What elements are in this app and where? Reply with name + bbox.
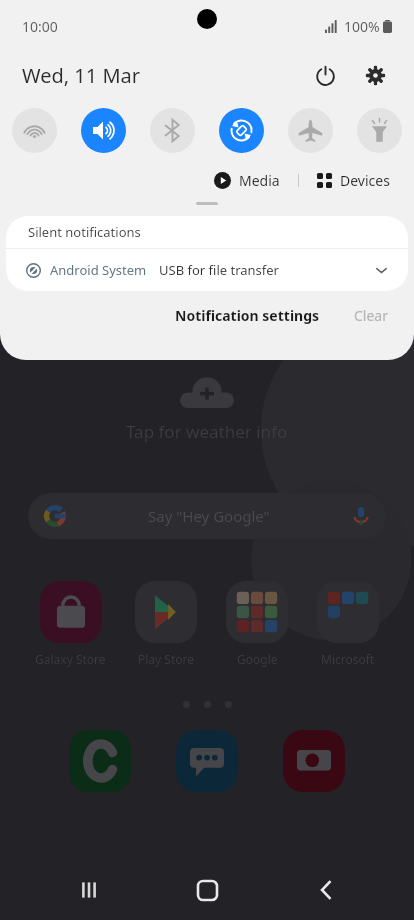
staticText: Google <box>237 651 278 667</box>
button[interactable] <box>176 730 238 792</box>
button[interactable]: Galaxy Store <box>31 577 110 671</box>
staticText: Play Store <box>138 651 194 667</box>
staticText: Say "Hey Google" <box>148 506 270 526</box>
button[interactable]: Android System <box>6 249 408 291</box>
button[interactable]: Google <box>222 577 292 671</box>
button[interactable]: Microsoft <box>313 577 383 671</box>
button[interactable]: Power <box>308 58 342 92</box>
button[interactable]: Play Store <box>131 577 201 671</box>
button[interactable]: Airplane mode <box>288 108 333 153</box>
button[interactable]: Notification settings <box>169 300 326 331</box>
staticText: Media <box>239 171 280 190</box>
staticText: USB for file transfer <box>159 261 279 279</box>
button[interactable] <box>69 730 131 792</box>
button[interactable]: Flashlight <box>357 108 402 153</box>
staticText: Tap for weather info <box>126 420 288 443</box>
button[interactable]: Tap for weather info <box>0 378 414 443</box>
button[interactable]: Devices <box>313 167 394 194</box>
staticText: Silent notifications <box>28 223 141 241</box>
staticText: Clear <box>354 306 388 325</box>
staticText: Notification settings <box>175 306 320 325</box>
button[interactable]: Auto rotate <box>219 108 264 153</box>
staticText: 100% <box>344 17 380 36</box>
staticText: Microsoft <box>321 651 375 667</box>
staticText: Galaxy Store <box>35 651 106 667</box>
staticText: Devices <box>340 171 390 190</box>
button[interactable]: Recents <box>59 860 119 920</box>
button[interactable] <box>283 730 345 792</box>
button[interactable]: Media <box>210 167 284 194</box>
button[interactable]: Home <box>177 860 237 920</box>
button[interactable]: Settings <box>358 58 392 92</box>
button[interactable]: Bluetooth <box>150 108 195 153</box>
staticText: 10:00 <box>22 17 58 36</box>
button[interactable]: Say "Hey Google" <box>28 493 386 539</box>
button[interactable]: Sound <box>81 108 126 153</box>
button[interactable]: Back <box>296 860 356 920</box>
staticText: Android System <box>50 261 147 279</box>
button[interactable]: Wi-Fi <box>12 108 57 153</box>
staticText: Wed, 11 Mar <box>22 62 141 89</box>
button[interactable]: Clear <box>348 300 394 331</box>
